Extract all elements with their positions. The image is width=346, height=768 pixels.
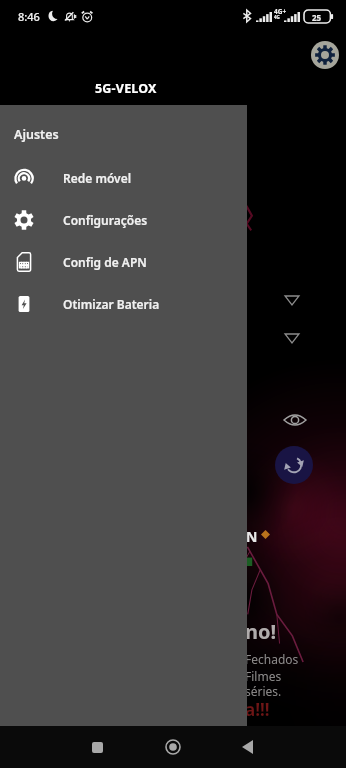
button[interactable]: Show password <box>282 407 308 433</box>
staticText: 4G <box>274 14 280 20</box>
button[interactable]: Rede móvel <box>0 157 247 199</box>
staticText: Config de APN <box>63 254 147 270</box>
staticText: Configurações <box>63 212 148 228</box>
staticText: N <box>246 527 258 546</box>
button[interactable]: Configurações <box>0 199 247 241</box>
button[interactable]: Otimizar Bateria <box>0 283 247 325</box>
staticText: séries. <box>245 683 282 699</box>
staticText: Ajustes <box>14 126 59 143</box>
staticText: Fechados <box>245 651 299 667</box>
button[interactable]: Back <box>234 726 260 768</box>
staticText: Filmes <box>245 668 282 684</box>
button[interactable]: Config de APN <box>0 241 247 283</box>
staticText: 5G-VELOX <box>95 80 157 97</box>
staticText: Rede móvel <box>63 170 132 186</box>
staticText: no! <box>245 618 277 645</box>
button[interactable]: Settings <box>311 41 339 69</box>
staticText: 8:46 <box>18 9 40 24</box>
staticText: a!!! <box>245 698 270 721</box>
staticText: Otimizar Bateria <box>63 296 160 312</box>
button[interactable]: Expand <box>279 325 305 351</box>
staticText: 4G+ <box>274 7 287 16</box>
button[interactable]: Recents <box>84 726 110 768</box>
button[interactable]: Refresh <box>275 446 313 484</box>
button[interactable]: Expand <box>279 287 305 313</box>
button[interactable]: Home <box>160 726 186 768</box>
staticText: 25 <box>312 12 322 23</box>
